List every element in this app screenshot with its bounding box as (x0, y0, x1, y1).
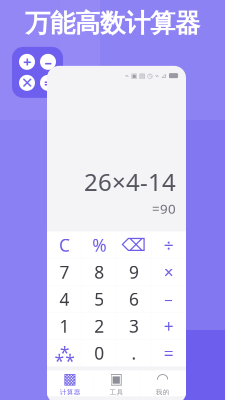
button[interactable]: 6 (116, 285, 151, 312)
staticText: . (131, 341, 136, 364)
staticText: 8 (94, 260, 104, 283)
staticText: C (59, 233, 70, 256)
staticText: + (23, 52, 31, 72)
button[interactable]: ▩ (47, 370, 93, 396)
staticText: 万能高数计算器 (25, 8, 200, 39)
button[interactable]: 4 (47, 285, 82, 312)
staticText: + (164, 314, 174, 337)
button[interactable]: 9 (116, 258, 151, 285)
staticText: ÷ (164, 233, 174, 256)
staticText: 5 (94, 287, 104, 310)
button[interactable]: × (151, 258, 186, 285)
button[interactable]: – (151, 285, 186, 312)
button[interactable]: 3 (116, 312, 151, 339)
button[interactable]: 1 (47, 312, 82, 339)
staticText: 6 (129, 287, 139, 310)
staticText: 0 (94, 341, 104, 364)
staticText: 26×4-14 (84, 166, 176, 198)
staticText: 4 (59, 287, 69, 310)
staticText: ◠ (156, 370, 169, 387)
staticText: ✕ (21, 74, 33, 91)
button[interactable]: ◠ (140, 370, 186, 396)
button[interactable]: ÷ (151, 231, 186, 258)
button[interactable]: C (47, 231, 82, 258)
staticText: ▣ (109, 370, 123, 387)
staticText: 我的 (156, 388, 170, 396)
button[interactable]: 7 (47, 258, 82, 285)
staticText: 计算器 (60, 388, 81, 396)
staticText: ⌁ ▣ ▤ ◷ ⌁ ⊿ (125, 72, 167, 79)
button[interactable]: ▣ (93, 370, 140, 396)
staticText: 3 (129, 314, 139, 337)
staticText: 工具 (109, 388, 123, 396)
button[interactable]: ⁂ (47, 339, 82, 366)
button[interactable]: 0 (82, 339, 117, 366)
staticText: 2 (94, 314, 104, 337)
staticText: = (164, 341, 174, 364)
button[interactable]: % (82, 231, 117, 258)
staticText: – (164, 287, 173, 310)
button[interactable]: 2 (82, 312, 117, 339)
staticText: ⌫ (121, 235, 146, 255)
staticText: 7 (59, 260, 69, 283)
button[interactable]: 5 (82, 285, 117, 312)
button[interactable]: 8 (82, 258, 117, 285)
staticText: ⁂ (55, 341, 74, 364)
staticText: % (92, 233, 106, 256)
staticText: × (164, 260, 174, 283)
button[interactable]: . (116, 339, 151, 366)
button[interactable]: + (151, 312, 186, 339)
staticText: =90 (152, 200, 176, 217)
staticText: 1 (59, 314, 69, 337)
button[interactable]: = (151, 339, 186, 366)
staticText: ▩ (63, 370, 77, 387)
staticText: 9 (129, 260, 139, 283)
button[interactable]: ⌫ (116, 231, 151, 258)
staticText: – (44, 52, 51, 72)
staticText: = (44, 73, 52, 93)
